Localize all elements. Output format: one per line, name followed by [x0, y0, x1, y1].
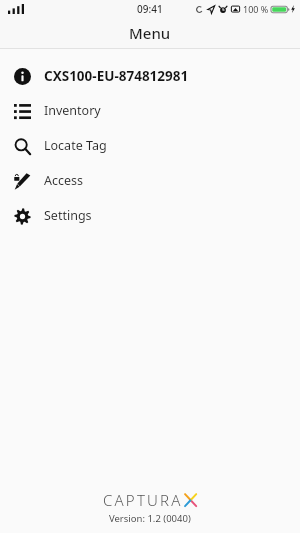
other: Settings — [14, 208, 31, 225]
staticText: Inventory — [44, 102, 101, 119]
staticText: Version: 1.2 (0040) — [109, 512, 191, 525]
other: Locate Tag — [14, 138, 31, 155]
staticText: Settings — [44, 207, 92, 224]
staticText: CXS100-EU-874812981 — [44, 67, 189, 85]
staticText: Access — [44, 172, 84, 189]
button[interactable]: Locate Tag — [0, 128, 300, 163]
button[interactable]: Settings — [0, 198, 300, 233]
other: Device info — [14, 68, 31, 85]
button[interactable]: Access — [0, 163, 300, 198]
staticText: 100 % — [243, 3, 269, 15]
staticText: Menu — [129, 23, 171, 43]
staticText: Locate Tag — [44, 137, 107, 154]
other: Inventory — [14, 103, 31, 120]
staticText: 09:41 — [137, 2, 163, 16]
staticText: CAPTURA — [103, 490, 183, 510]
other: Access — [14, 173, 31, 190]
button[interactable]: Inventory — [0, 93, 300, 128]
button[interactable]: Device info — [0, 58, 300, 93]
